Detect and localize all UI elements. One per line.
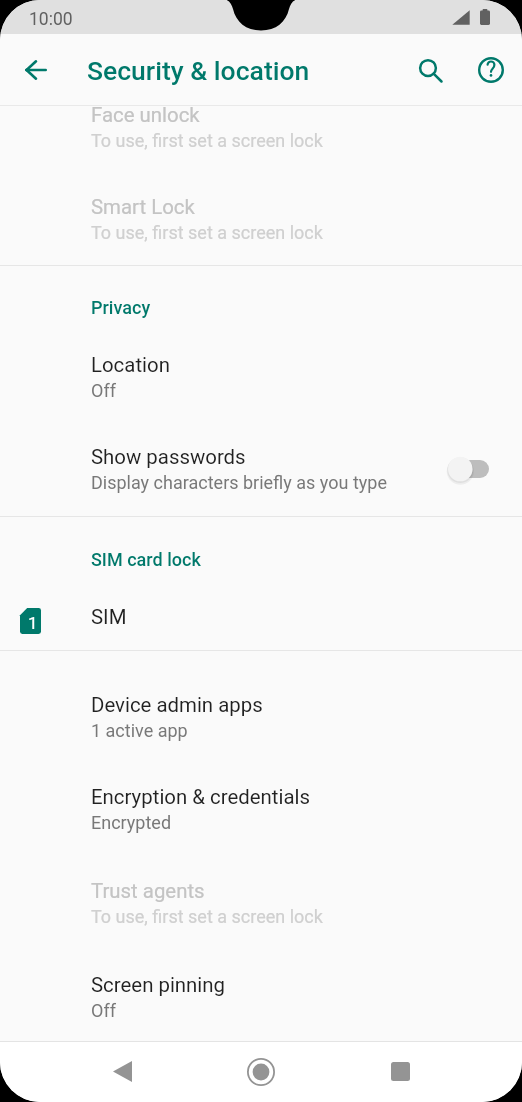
button[interactable]: Recent apps — [369, 1041, 431, 1102]
staticText: To use, first set a screen lock — [91, 222, 323, 243]
staticText: Smart Lock — [91, 195, 195, 219]
button[interactable]: Back — [91, 1041, 153, 1102]
staticText: Display characters briefly as you type — [91, 472, 387, 493]
button[interactable]: Face unlock — [0, 103, 522, 175]
button[interactable]: Smart Lock — [0, 175, 522, 265]
staticText: 10:00 — [29, 9, 73, 30]
staticText: Security & location — [87, 55, 310, 86]
button[interactable]: Home — [230, 1041, 292, 1102]
staticText: 1 active app — [91, 720, 188, 741]
staticText: Trust agents — [91, 879, 205, 903]
staticText: Location — [91, 353, 170, 377]
button[interactable]: Help — [462, 41, 520, 99]
staticText: Off — [91, 1000, 116, 1021]
staticText: Off — [91, 380, 116, 401]
staticText: To use, first set a screen lock — [91, 130, 323, 151]
button[interactable]: Encryption & credentials — [0, 763, 522, 856]
button[interactable]: Search — [401, 41, 459, 99]
button[interactable]: Location — [0, 318, 522, 420]
staticText: Privacy — [91, 297, 151, 318]
staticText: Encryption & credentials — [91, 785, 311, 809]
staticText: Device admin apps — [91, 693, 263, 717]
button[interactable]: Screen pinning — [0, 950, 522, 1044]
staticText: Encrypted — [91, 812, 172, 833]
staticText: Screen pinning — [91, 973, 226, 997]
button[interactable]: Show passwords — [448, 454, 489, 484]
button[interactable]: Trust agents — [0, 856, 522, 950]
staticText: SIM card lock — [91, 549, 201, 570]
button[interactable]: Back — [0, 34, 72, 106]
staticText: To use, first set a screen lock — [91, 906, 323, 927]
staticText: Show passwords — [91, 445, 246, 469]
button[interactable]: Show passwords — [0, 420, 522, 516]
staticText: SIM — [91, 605, 127, 629]
button[interactable]: Device admin apps — [0, 651, 522, 763]
staticText: 1 — [28, 613, 38, 633]
button[interactable]: 1 — [0, 570, 522, 650]
staticText: Face unlock — [91, 103, 200, 127]
